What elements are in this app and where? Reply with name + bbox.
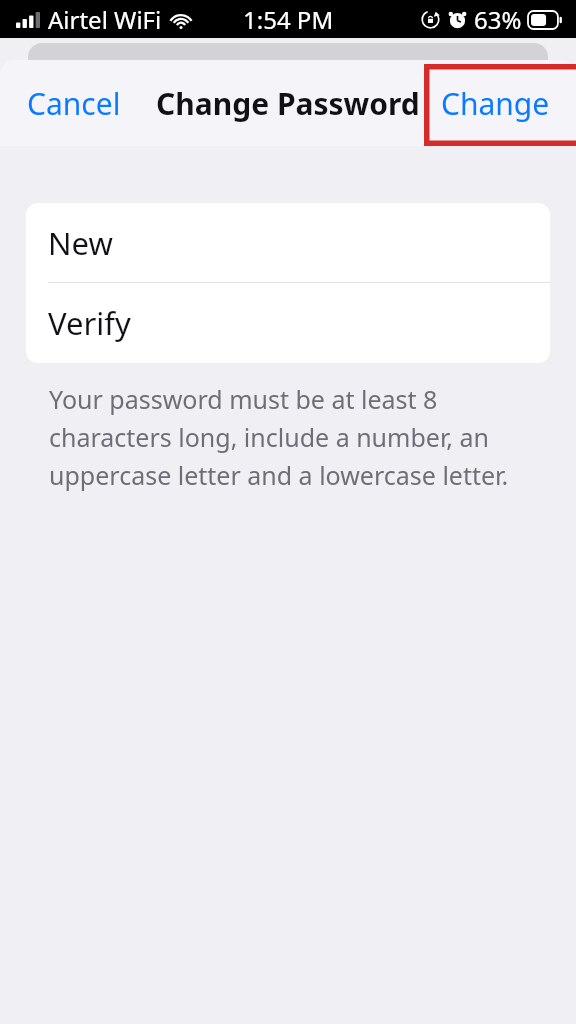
button[interactable]: Verify (26, 283, 550, 363)
staticText: Airtel WiFi (48, 3, 162, 36)
button[interactable]: New (26, 203, 550, 282)
button[interactable]: Change (427, 73, 576, 134)
staticText: New (48, 222, 113, 264)
staticText: 1:54 PM (243, 3, 334, 36)
staticText: Change (441, 83, 550, 124)
staticText: Your password must be at least 8 charact… (49, 382, 531, 492)
staticText: Verify (48, 302, 131, 344)
staticText: Change Password (156, 83, 420, 124)
button[interactable]: Cancel (0, 73, 135, 134)
staticText: 63% (474, 3, 522, 36)
staticText: Cancel (27, 83, 121, 124)
